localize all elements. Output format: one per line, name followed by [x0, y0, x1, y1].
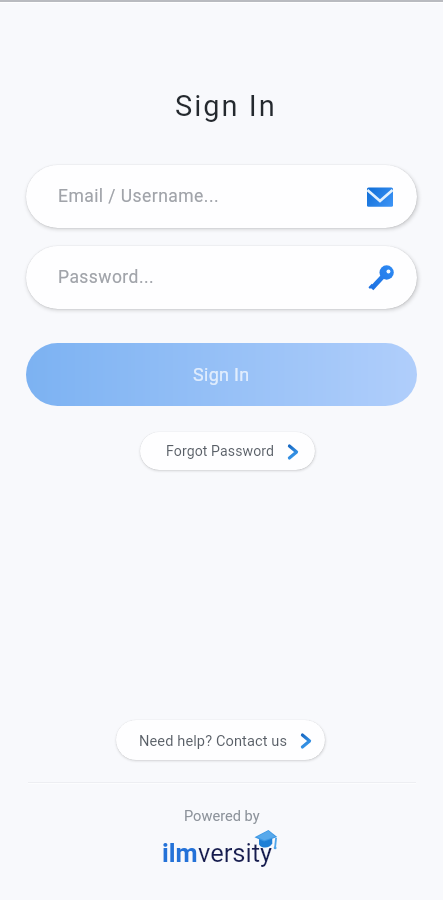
staticText: Forgot Password [166, 443, 275, 460]
staticText: Sign In [193, 364, 250, 385]
button[interactable]: Forgot Password [140, 432, 315, 470]
button[interactable]: Sign In [26, 343, 417, 406]
other: Password [367, 263, 393, 289]
staticText: versity [198, 838, 273, 868]
staticText: Sign In [175, 89, 277, 123]
button[interactable]: Need help? Contact us [116, 720, 325, 760]
staticText: Password... [58, 267, 155, 288]
staticText: Powered by [184, 807, 260, 824]
button[interactable]: Email / Username... [26, 165, 417, 228]
other: Email [367, 184, 393, 210]
staticText: Email / Username... [58, 186, 220, 207]
staticText: Need help? Contact us [139, 732, 288, 749]
staticText: ilm [162, 838, 198, 868]
button[interactable]: Password... [26, 246, 417, 309]
